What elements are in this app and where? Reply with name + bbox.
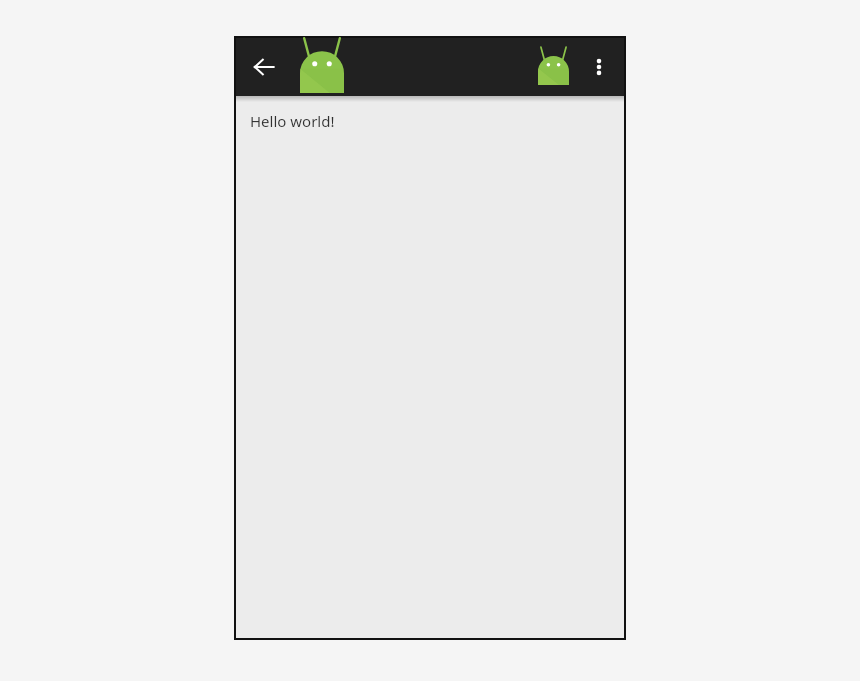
button[interactable]: Android [300,38,344,93]
button[interactable]: Android action [538,47,569,85]
staticText: Hello world! [250,111,335,131]
button[interactable]: More options [575,43,623,91]
button[interactable]: Navigate up [240,43,288,91]
